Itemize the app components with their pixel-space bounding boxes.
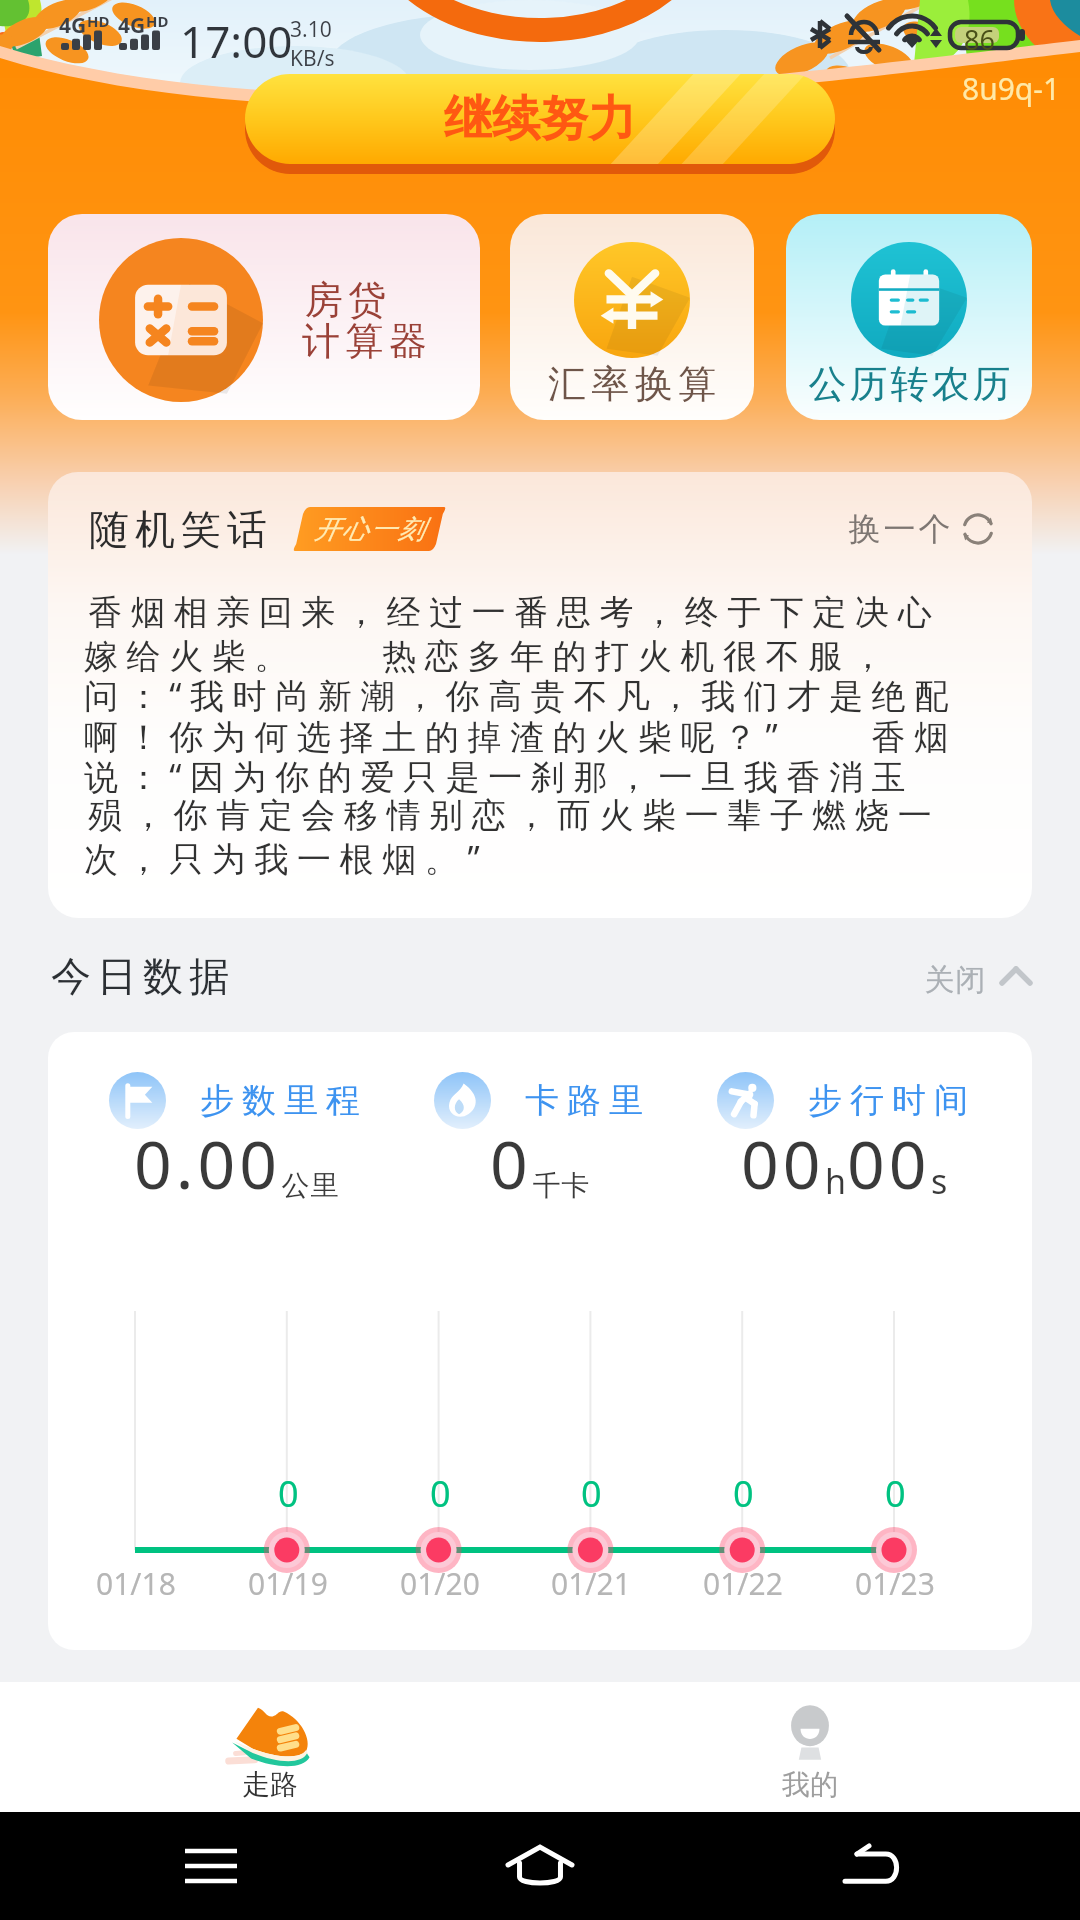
- staticText: HD: [146, 11, 169, 31]
- staticText: 0: [430, 1469, 451, 1518]
- staticText: 走路: [242, 1767, 298, 1802]
- staticText: 说：“因为你的爱只是一刹那，一旦我香消玉: [84, 753, 915, 799]
- staticText: 继续努力: [444, 89, 636, 149]
- button[interactable]: 走路: [0, 1682, 540, 1812]
- button[interactable]: 我的: [540, 1682, 1080, 1812]
- staticText: 随机笑话: [86, 504, 270, 554]
- button[interactable]: Home: [490, 1812, 590, 1920]
- staticText: 关闭: [924, 961, 986, 999]
- staticText: 公里: [281, 1168, 339, 1203]
- staticText: 01/22: [703, 1563, 783, 1604]
- staticText: 4G: [118, 11, 146, 40]
- button[interactable]: 房贷: [48, 214, 480, 420]
- button[interactable]: Back: [819, 1812, 919, 1920]
- button[interactable]: 关闭: [924, 957, 1032, 995]
- staticText: 步行时间: [804, 1079, 972, 1122]
- staticText: 0: [581, 1469, 602, 1518]
- staticText: h: [825, 1158, 847, 1204]
- staticText: 公历转农历: [807, 360, 1012, 408]
- staticText: 步数里程: [196, 1079, 364, 1122]
- staticText: 01/18: [96, 1563, 176, 1604]
- staticText: 01/19: [248, 1563, 328, 1604]
- staticText: 嫁给火柴。 热恋多年的打火机很不服，: [84, 632, 894, 678]
- staticText: 汇率换算: [545, 360, 719, 408]
- staticText: 次，只为我一根烟。”: [84, 835, 489, 881]
- staticText: 殒，你肯定会移情别恋，而火柴一辈子燃烧一: [84, 794, 936, 837]
- staticText: 0: [885, 1469, 906, 1518]
- staticText: 00: [847, 1118, 931, 1208]
- staticText: 房贷: [302, 276, 389, 324]
- staticText: 86: [964, 21, 995, 58]
- staticText: 0: [733, 1469, 754, 1518]
- staticText: 00: [741, 1118, 825, 1208]
- staticText: 0.00: [134, 1118, 281, 1208]
- staticText: 0: [490, 1118, 532, 1208]
- button[interactable]: Menu: [161, 1812, 261, 1920]
- staticText: 01/21: [551, 1563, 631, 1604]
- staticText: 香烟相亲回来，经过一番思考，终于下定决心: [84, 591, 936, 634]
- staticText: 问：“我时尚新潮，你高贵不凡，我们才是绝配: [84, 672, 957, 718]
- staticText: 01/23: [855, 1563, 935, 1604]
- staticText: 千卡: [532, 1168, 590, 1203]
- staticText: KB/s: [290, 44, 335, 73]
- staticText: 17:00: [180, 11, 293, 71]
- staticText: 卡路里: [521, 1079, 647, 1122]
- staticText: s: [931, 1158, 948, 1204]
- staticText: 我的: [782, 1767, 838, 1802]
- staticText: 今日数据: [48, 951, 232, 1001]
- staticText: 计算器: [302, 317, 433, 365]
- staticText: 8u9q-1: [962, 68, 1061, 109]
- staticText: 0: [278, 1469, 299, 1518]
- staticText: 开心一刻: [313, 513, 425, 546]
- staticText: 4G: [59, 11, 87, 40]
- staticText: 啊！你为何选择土的掉渣的火柴呢？” 香烟: [84, 713, 957, 759]
- staticText: 换一个: [847, 509, 952, 549]
- staticText: HD: [87, 11, 110, 31]
- button[interactable]: 公历转农历: [786, 214, 1032, 420]
- button[interactable]: 换一个: [847, 509, 994, 549]
- button[interactable]: 继续努力: [245, 74, 835, 164]
- staticText: 01/20: [400, 1563, 480, 1604]
- button[interactable]: 汇率换算: [510, 214, 754, 420]
- staticText: 3.10: [290, 15, 332, 44]
